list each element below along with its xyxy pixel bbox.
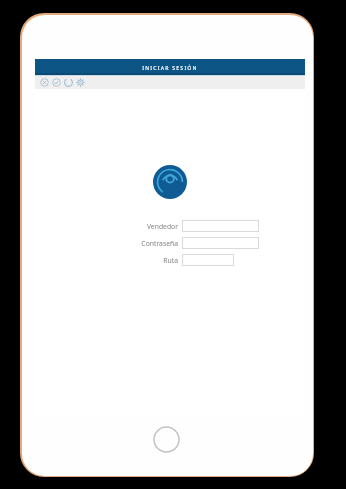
button[interactable]: Refresh (63, 77, 74, 88)
button[interactable]: Accept (51, 77, 62, 88)
staticText: INICIAR SESIÓN (142, 64, 198, 71)
button[interactable] (182, 237, 259, 249)
button[interactable] (182, 254, 234, 266)
button[interactable] (182, 220, 259, 232)
button[interactable]: Close (39, 77, 50, 88)
staticText: Contraseña (141, 239, 178, 248)
staticText: Vendedor (146, 222, 178, 231)
button[interactable]: Home (153, 426, 180, 453)
button[interactable]: Settings (75, 77, 86, 88)
button[interactable]: User account (153, 165, 187, 199)
staticText: Ruta (163, 256, 178, 265)
